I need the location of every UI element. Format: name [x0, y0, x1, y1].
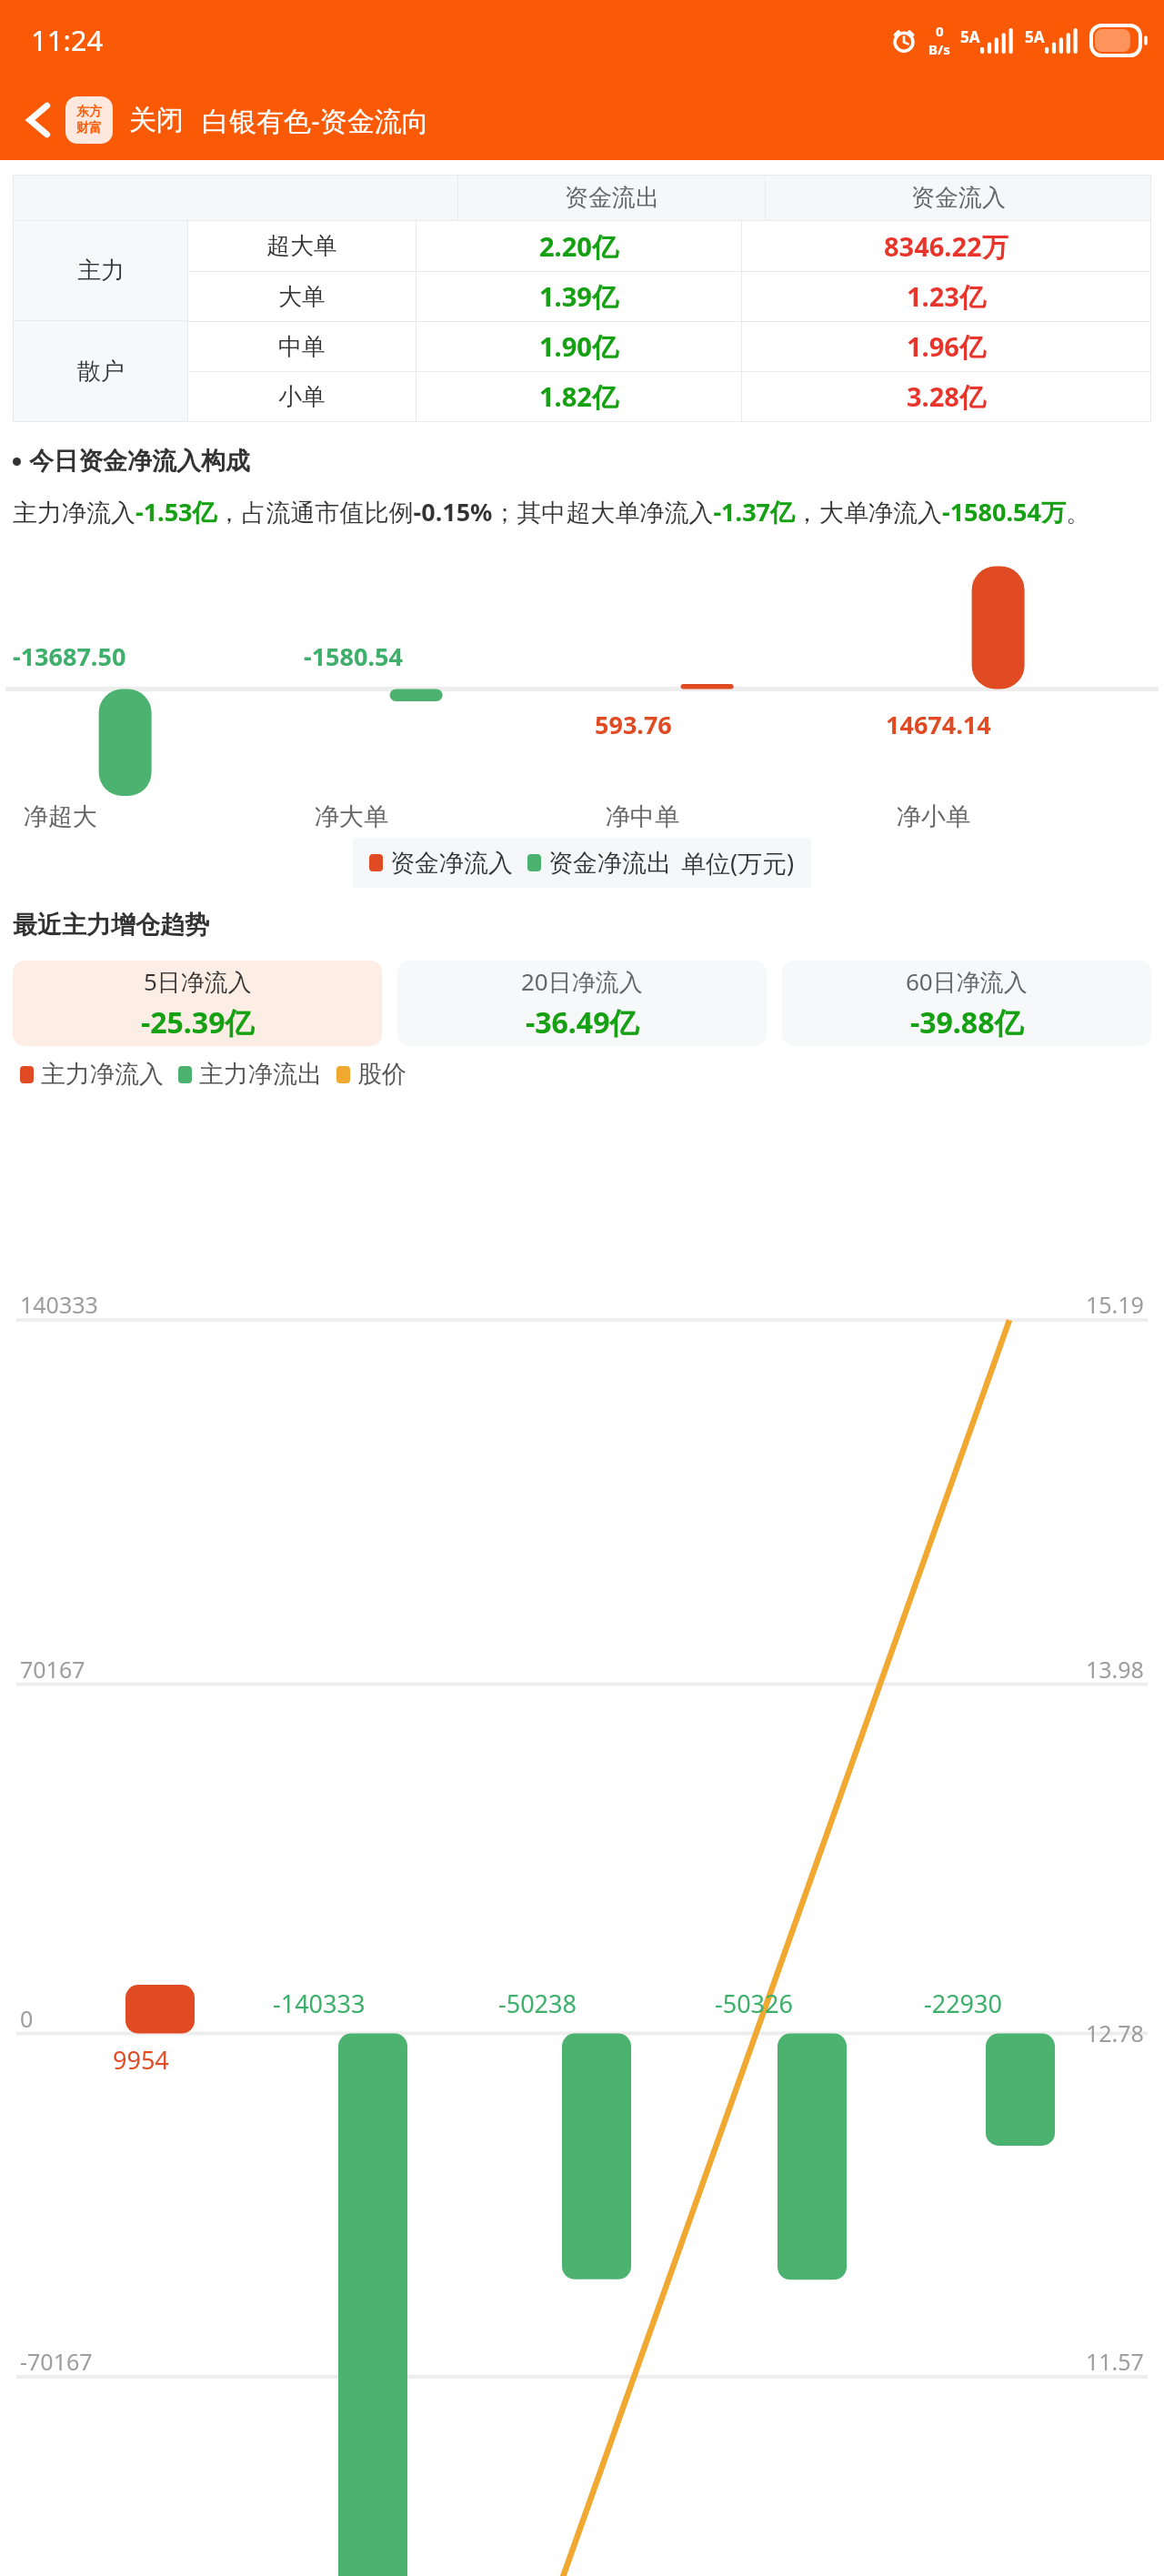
- staticText: 1.90亿: [539, 328, 618, 365]
- staticText: 0: [936, 22, 944, 40]
- staticText: 5A: [960, 26, 980, 47]
- staticText: 11.57: [1086, 2346, 1144, 2377]
- staticText: 5A: [1025, 26, 1045, 47]
- staticText: -50238: [498, 1987, 577, 2020]
- staticText: 净小单: [897, 801, 970, 832]
- staticText: 中单: [278, 332, 326, 362]
- staticText: 593.76: [595, 708, 672, 741]
- staticText: 主力净流入-1.53亿，占流通市值比例-0.15%；其中超大单净流入-1.37亿…: [13, 495, 1090, 528]
- staticText: 散户: [77, 357, 125, 387]
- staticText: -13687.50: [13, 639, 126, 673]
- button[interactable]: Back: [13, 94, 65, 146]
- staticText: 3.28亿: [907, 378, 986, 415]
- staticText: -70167: [20, 2346, 93, 2377]
- staticText: 9954: [113, 2043, 169, 2077]
- button[interactable]: 20日净流入: [397, 961, 767, 1046]
- staticText: 11:24: [31, 21, 104, 59]
- staticText: 15.19: [1086, 1289, 1144, 1320]
- staticText: 2.20亿: [539, 228, 618, 265]
- staticText: 5日净流入: [144, 965, 252, 998]
- staticText: B/s: [928, 40, 950, 58]
- button[interactable]: 东方财富: [65, 96, 113, 144]
- button[interactable]: 关闭: [129, 103, 184, 137]
- staticText: 小单: [278, 382, 326, 412]
- staticText: 东方: [76, 104, 102, 120]
- staticText: 13.98: [1086, 1654, 1144, 1685]
- staticText: 资金流出: [565, 183, 659, 213]
- staticText: 20日净流入: [521, 965, 643, 998]
- staticText: 资金流入: [911, 183, 1006, 213]
- staticText: 资金净流出: [548, 848, 671, 879]
- button[interactable]: 60日净流入: [782, 961, 1151, 1046]
- staticText: -50326: [715, 1987, 793, 2020]
- staticText: 最近主力增仓趋势: [13, 910, 209, 941]
- staticText: 140333: [20, 1289, 98, 1320]
- staticText: 主力净流入: [41, 1059, 164, 1090]
- staticText: -25.39亿: [141, 1002, 255, 1042]
- staticText: 财富: [76, 120, 102, 136]
- button[interactable]: 资金净流入: [353, 838, 811, 888]
- button[interactable]: 5日净流入: [13, 961, 382, 1046]
- staticText: 净中单: [606, 801, 679, 832]
- staticText: 主力净流出: [199, 1059, 322, 1090]
- staticText: 主力: [77, 256, 125, 286]
- staticText: -22930: [924, 1987, 1002, 2020]
- staticText: 70167: [20, 1654, 85, 1685]
- staticText: 8346.22万: [884, 228, 1008, 265]
- staticText: 1.96亿: [907, 328, 986, 365]
- staticText: 白银有色-资金流向: [202, 102, 429, 139]
- staticText: 净大单: [315, 801, 388, 832]
- staticText: -36.49亿: [526, 1002, 639, 1042]
- staticText: 单位(万元): [681, 846, 795, 880]
- staticText: 1.23亿: [907, 278, 986, 315]
- staticText: 1.39亿: [539, 278, 618, 315]
- staticText: 12.78: [1086, 2018, 1144, 2048]
- staticText: 超大单: [266, 231, 337, 261]
- staticText: 今日资金净流入构成: [29, 446, 250, 477]
- staticText: 股价: [357, 1059, 406, 1090]
- staticText: 资金净流入: [390, 848, 513, 879]
- staticText: 净超大: [24, 801, 97, 832]
- staticText: -39.88亿: [910, 1002, 1024, 1042]
- staticText: 大单: [278, 282, 326, 312]
- staticText: 14674.14: [886, 708, 991, 741]
- staticText: 1.82亿: [539, 378, 618, 415]
- staticText: 60日净流入: [906, 965, 1028, 998]
- staticText: 0: [20, 2003, 34, 2034]
- staticText: -140333: [273, 1987, 366, 2020]
- staticText: -1580.54: [304, 639, 403, 673]
